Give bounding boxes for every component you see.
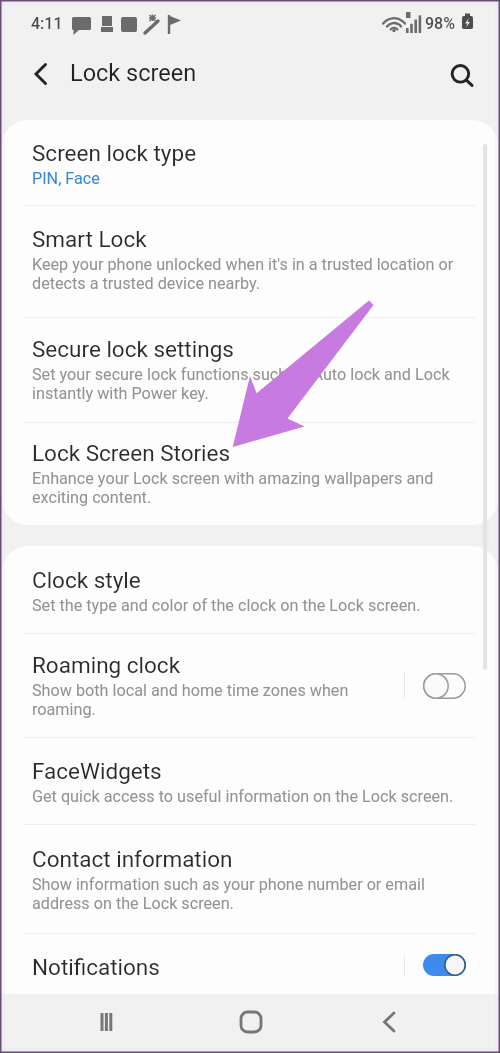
staticText: 98%	[425, 14, 455, 33]
staticText: Contact information	[32, 846, 233, 872]
staticText: Set the type and color of the clock on t…	[32, 596, 421, 615]
staticText: Show both local and home time zones when…	[32, 681, 392, 719]
staticText: Lock Screen Stories	[32, 440, 231, 466]
staticText: Set your secure lock functions such as A…	[32, 365, 456, 403]
button[interactable]: Navigate up	[21, 54, 65, 98]
button[interactable]: Notifications	[2, 934, 498, 994]
button[interactable]: Clock style	[2, 546, 498, 633]
button[interactable]: Recent apps	[81, 994, 141, 1051]
button[interactable]: Lock Screen Stories	[2, 423, 498, 525]
staticText: Secure lock settings	[32, 336, 234, 362]
staticText: Clock style	[32, 567, 141, 593]
staticText: Screen lock type	[32, 140, 197, 166]
button[interactable]: Smart Lock	[2, 206, 498, 317]
button[interactable]: Home	[221, 994, 281, 1051]
button[interactable]: Contact information	[2, 825, 498, 933]
button[interactable]: Back	[359, 994, 419, 1051]
button[interactable]: Roaming clock	[2, 634, 498, 737]
staticText: FaceWidgets	[32, 758, 162, 784]
staticText: Keep your phone unlocked when it's in a …	[32, 255, 456, 293]
staticText: Smart Lock	[32, 226, 147, 252]
staticText: PIN, Face	[32, 169, 100, 188]
staticText: 4:11	[31, 14, 63, 33]
button[interactable]: Secure lock settings	[2, 318, 498, 422]
button[interactable]: FaceWidgets	[2, 738, 498, 824]
staticText: Get quick access to useful information o…	[32, 787, 454, 806]
button[interactable]: Search	[438, 50, 484, 96]
staticText: Lock screen	[70, 59, 197, 87]
staticText: Notifications	[32, 954, 160, 976]
button[interactable]: Screen lock type	[2, 120, 498, 205]
staticText: Enhance your Lock screen with amazing wa…	[32, 469, 456, 507]
staticText: Roaming clock	[32, 652, 181, 678]
button[interactable]: Switch off	[423, 673, 466, 699]
staticText: Show information such as your phone numb…	[32, 875, 456, 913]
button[interactable]: Switch on	[423, 954, 466, 976]
